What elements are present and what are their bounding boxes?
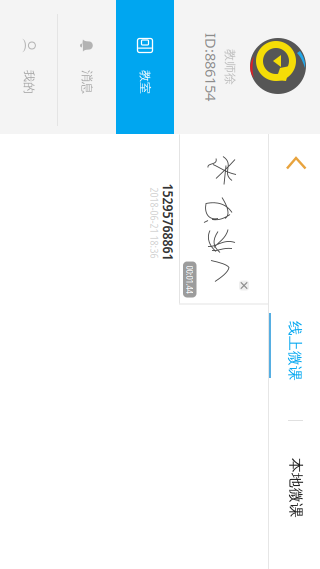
button[interactable]: 00:01.44 <box>10 176 180 306</box>
staticText: 线上微课 <box>196 140 256 158</box>
staticText: 00:01.44 <box>141 248 169 261</box>
button[interactable]: 线上微课 <box>186 124 266 176</box>
button[interactable]: 删除 <box>156 195 166 205</box>
